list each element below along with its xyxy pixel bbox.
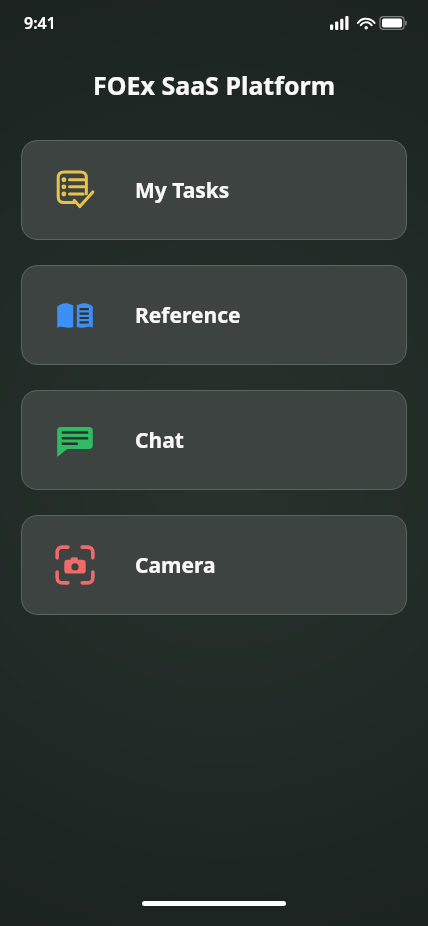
staticText: My Tasks bbox=[135, 176, 230, 205]
other: Camera bbox=[54, 544, 96, 586]
staticText: Chat bbox=[135, 426, 184, 455]
button[interactable]: Reference bbox=[21, 265, 407, 365]
other: My Tasks bbox=[54, 169, 96, 211]
staticText: FOEx SaaS Platform bbox=[0, 68, 428, 102]
button[interactable]: Camera bbox=[21, 515, 407, 615]
button[interactable]: Chat bbox=[21, 390, 407, 490]
other: Reference bbox=[55, 295, 95, 335]
button[interactable]: My Tasks bbox=[21, 140, 407, 240]
other: Chat bbox=[55, 420, 95, 460]
staticText: 9:41 bbox=[24, 12, 56, 34]
staticText: Camera bbox=[135, 551, 216, 580]
staticText: Reference bbox=[135, 301, 241, 330]
